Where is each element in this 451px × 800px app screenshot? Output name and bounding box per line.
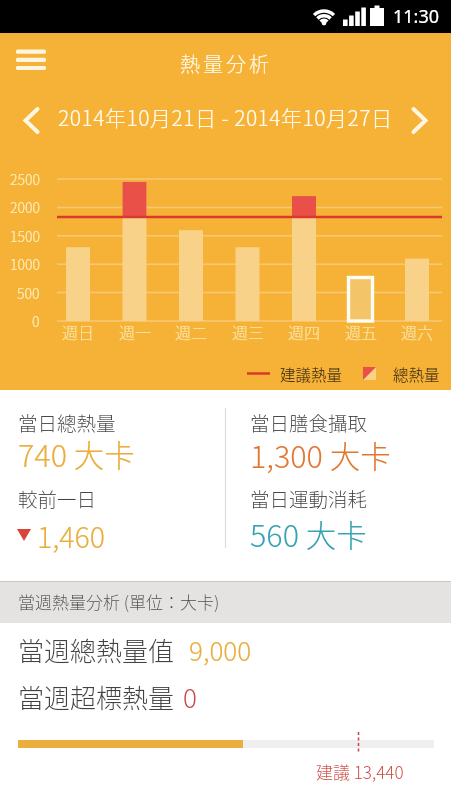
staticText: 1,460 <box>37 515 106 556</box>
staticText: 較前一日 <box>18 484 97 512</box>
button[interactable] <box>288 170 320 342</box>
staticText: 2014年10月21日 - 2014年10月27日 <box>58 102 393 132</box>
staticText: 熱量分析 <box>180 49 272 78</box>
staticText: 週一 <box>119 320 152 343</box>
staticText: 建議 13,440 <box>316 759 404 784</box>
button[interactable] <box>401 170 433 342</box>
staticText: 1500 <box>10 226 40 246</box>
staticText: 1000 <box>10 254 40 274</box>
button[interactable] <box>175 170 207 342</box>
staticText: 500 <box>17 283 40 303</box>
staticText: 11:30 <box>393 4 440 29</box>
staticText: 當週熱量分析 (單位：大卡) <box>18 589 220 614</box>
staticText: 當日膳食攝取 <box>250 408 368 436</box>
button[interactable] <box>8 98 56 142</box>
button[interactable] <box>62 170 94 342</box>
staticText: 560 大卡 <box>250 512 367 556</box>
button[interactable] <box>395 98 443 142</box>
staticText: 總熱量 <box>393 363 440 385</box>
staticText: 週四 <box>288 320 321 343</box>
staticText: 740 大卡 <box>18 432 135 476</box>
button[interactable] <box>232 170 264 342</box>
staticText: 0 <box>183 678 197 716</box>
staticText: 週三 <box>232 320 265 343</box>
staticText: 9,000 <box>189 631 252 669</box>
staticText: 0 <box>32 311 40 331</box>
staticText: 週日 <box>62 320 95 343</box>
staticText: 週六 <box>401 320 434 343</box>
staticText: 1,300 大卡 <box>250 433 391 477</box>
staticText: 當週總熱量值 <box>18 631 175 669</box>
button[interactable] <box>8 41 56 82</box>
staticText: 週二 <box>175 320 208 343</box>
button[interactable] <box>345 170 377 342</box>
staticText: 當日運動消耗 <box>250 484 368 512</box>
staticText: 建議熱量 <box>280 363 342 385</box>
staticText: 當週超標熱量 <box>18 678 175 716</box>
staticText: 2000 <box>10 197 40 217</box>
staticText: 2500 <box>10 169 40 189</box>
staticText: 當日總熱量 <box>18 408 116 436</box>
button[interactable] <box>119 170 151 342</box>
staticText: 週五 <box>345 320 378 343</box>
